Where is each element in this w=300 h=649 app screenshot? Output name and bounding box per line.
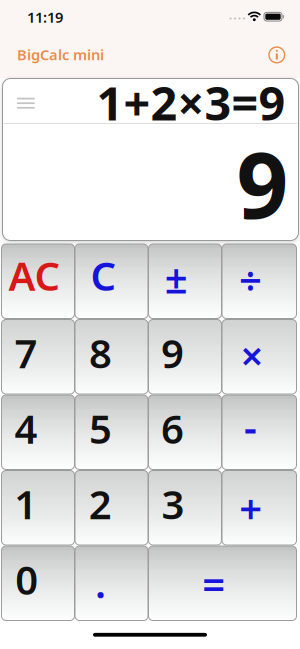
button[interactable]: C	[75, 244, 148, 318]
staticText: 7	[14, 326, 37, 379]
staticText: 2	[89, 477, 112, 530]
staticText: 9	[161, 326, 184, 379]
staticText: ±	[165, 251, 188, 304]
button[interactable]: 3	[148, 470, 221, 545]
staticText: 3	[161, 477, 184, 530]
button[interactable]: -	[222, 395, 296, 469]
button[interactable]: AC	[1, 244, 74, 318]
staticText: =	[202, 557, 225, 610]
button[interactable]: 5	[75, 395, 148, 469]
staticText: ÷	[239, 254, 262, 307]
staticText: 0	[15, 553, 38, 606]
staticText: 6	[161, 402, 184, 455]
button[interactable]: ±	[148, 244, 221, 318]
button[interactable]: 6	[148, 395, 221, 469]
staticText: +	[239, 481, 262, 534]
staticText: 1+2×3=9	[96, 71, 285, 133]
staticText: 5	[89, 402, 112, 455]
staticText: 1	[14, 477, 37, 530]
staticText: BigCalc mini	[17, 45, 104, 64]
staticText: ×	[241, 329, 264, 382]
button[interactable]: ×	[222, 319, 296, 394]
button[interactable]: 7	[1, 319, 74, 394]
button[interactable]: 4	[1, 395, 74, 469]
staticText: 11:19	[27, 7, 63, 27]
staticText: -	[244, 400, 257, 453]
button[interactable]: .	[75, 546, 148, 620]
staticText: C	[90, 249, 116, 302]
button[interactable]: 0	[1, 546, 74, 620]
button[interactable]: 8	[75, 319, 148, 394]
button[interactable]: Info	[266, 44, 288, 66]
button[interactable]: Menu	[11, 90, 41, 116]
staticText: 4	[14, 402, 37, 455]
button[interactable]: =	[148, 546, 296, 620]
staticText: 8	[89, 326, 112, 379]
button[interactable]: 1	[1, 470, 74, 545]
staticText: .	[95, 556, 106, 609]
button[interactable]: ÷	[222, 244, 296, 318]
staticText: 9	[236, 123, 288, 243]
button[interactable]: 2	[75, 470, 148, 545]
button[interactable]: 9	[148, 319, 221, 394]
staticText: AC	[9, 249, 61, 302]
button[interactable]: +	[222, 470, 296, 545]
